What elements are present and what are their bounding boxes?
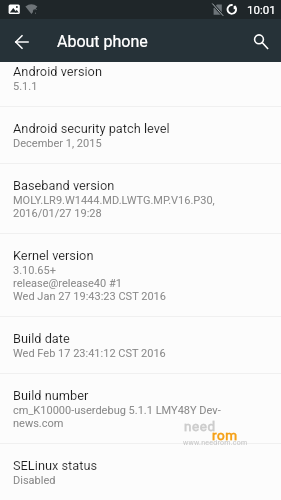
button[interactable]: Build number (0, 374, 281, 443)
button[interactable]: Navigate up (0, 21, 44, 62)
button[interactable]: Android version (0, 50, 281, 106)
button[interactable]: Baseband version (0, 164, 281, 233)
staticText: December 1, 2015 (13, 137, 102, 150)
staticText: Build number (13, 388, 89, 403)
button[interactable]: Search (239, 21, 281, 62)
staticText: need (184, 418, 216, 434)
staticText: 3.10.65+ (13, 264, 56, 277)
staticText: Wed Feb 17 23:41:12 CST 2016 (13, 347, 166, 360)
staticText: Disabled (13, 474, 56, 487)
staticText: Baseband version (13, 178, 115, 193)
button[interactable]: Build date (0, 317, 281, 373)
staticText: 5.1.1 (13, 80, 38, 93)
button[interactable]: Android security patch level (0, 107, 281, 163)
staticText: Android version (13, 64, 102, 79)
staticText: rom (212, 427, 238, 443)
button[interactable]: Kernel version (0, 234, 281, 316)
staticText: release@release40 #1 (13, 277, 122, 290)
staticText: Android security patch level (13, 121, 170, 136)
staticText: SELinux status (13, 458, 98, 473)
staticText: news.com (13, 417, 64, 430)
staticText: Wed Jan 27 19:43:23 CST 2016 (13, 290, 166, 303)
button[interactable]: SELinux status (0, 444, 281, 500)
staticText: 10:01 (247, 3, 276, 16)
staticText: Build date (13, 331, 70, 346)
staticText: About phone (57, 32, 148, 51)
staticText: 2016/01/27 19:28 (13, 207, 102, 220)
staticText: MOLY.LR9.W1444.MD.LWTG.MP.V16.P30, (13, 194, 215, 207)
staticText: cm_K10000-userdebug 5.1.1 LMY48Y Dev- (13, 404, 221, 417)
staticText: www.needrom.com (183, 439, 248, 447)
staticText: Kernel version (13, 248, 94, 263)
